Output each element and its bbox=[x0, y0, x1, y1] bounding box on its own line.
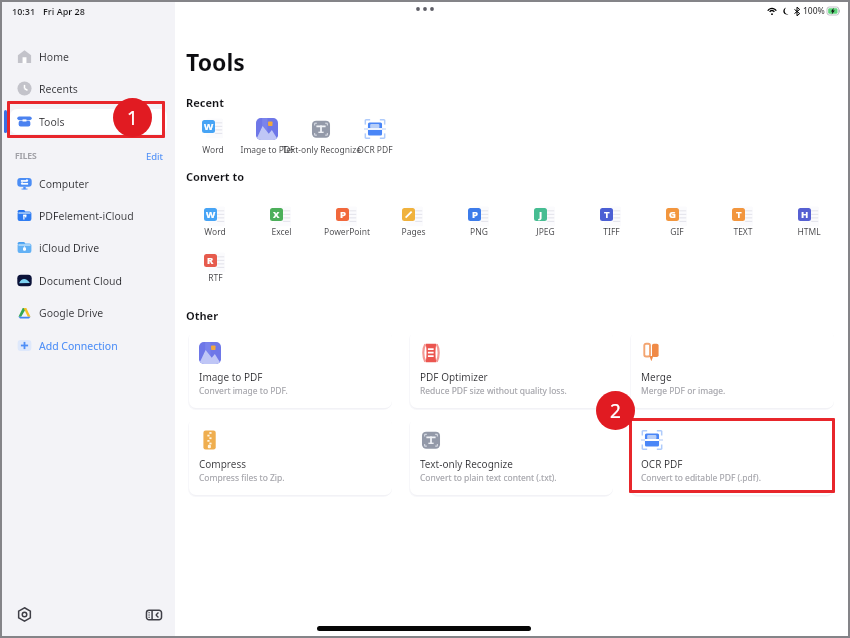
button[interactable]: OCR PDF bbox=[631, 417, 834, 495]
staticText: Pages bbox=[401, 226, 426, 238]
staticText: Merge PDF or image. bbox=[641, 385, 726, 397]
staticText: Tools bbox=[39, 115, 65, 129]
staticText: Other bbox=[186, 308, 219, 323]
button[interactable]: Google Drive bbox=[2, 300, 175, 325]
button[interactable]: Image to PDF bbox=[189, 330, 392, 408]
button[interactable]: P bbox=[446, 206, 512, 246]
button[interactable]: Merge bbox=[631, 330, 834, 408]
button[interactable]: J bbox=[512, 206, 578, 246]
staticText: Convert image to PDF. bbox=[199, 385, 288, 397]
staticText: Excel bbox=[271, 226, 292, 238]
staticText: Add Connection bbox=[39, 339, 118, 353]
staticText: Edit bbox=[146, 150, 164, 162]
staticText: 10:31 bbox=[12, 5, 36, 17]
button[interactable]: Recents bbox=[2, 76, 175, 101]
staticText: T bbox=[604, 208, 610, 221]
staticText: PowerPoint bbox=[324, 226, 370, 238]
staticText: 1 bbox=[127, 105, 138, 131]
staticText: Fri Apr 28 bbox=[43, 5, 85, 17]
staticText: P bbox=[340, 208, 346, 221]
button[interactable]: PDFelement-iCloud bbox=[2, 203, 175, 228]
staticText: Text-only Recognize bbox=[282, 144, 361, 156]
staticText: Google Drive bbox=[39, 306, 104, 320]
staticText: T bbox=[736, 208, 742, 221]
staticText: iCloud Drive bbox=[39, 241, 100, 255]
staticText: OCR PDF bbox=[357, 144, 393, 156]
staticText: PNG bbox=[470, 226, 488, 238]
staticText: Convert to plain text content (.txt). bbox=[420, 472, 557, 484]
staticText: PDFelement-iCloud bbox=[39, 209, 134, 223]
staticText: Word bbox=[202, 144, 224, 156]
staticText: 100% bbox=[803, 5, 825, 17]
staticText: J bbox=[539, 208, 543, 221]
staticText: Tools bbox=[186, 46, 245, 77]
staticText: OCR PDF bbox=[641, 457, 683, 471]
staticText: P bbox=[472, 208, 478, 221]
staticText: Image to PDF bbox=[240, 144, 295, 156]
button[interactable]: OCR PDF bbox=[330, 118, 420, 158]
button[interactable]: P bbox=[314, 206, 380, 246]
staticText: 2 bbox=[610, 398, 621, 424]
staticText: Convert to editable PDF (.pdf). bbox=[641, 472, 761, 484]
staticText: R bbox=[207, 254, 214, 267]
staticText: X bbox=[273, 208, 280, 221]
staticText: Home bbox=[39, 50, 69, 64]
button[interactable]: T bbox=[710, 206, 776, 246]
staticText: Word bbox=[204, 226, 226, 238]
button[interactable]: Pages bbox=[380, 206, 446, 246]
staticText: Recents bbox=[39, 82, 78, 96]
staticText: TEXT bbox=[733, 226, 753, 238]
staticText: Merge bbox=[641, 370, 672, 384]
button[interactable]: Document Cloud bbox=[2, 268, 175, 293]
button[interactable]: Image to PDF bbox=[222, 118, 312, 158]
staticText: RTF bbox=[208, 272, 223, 284]
button[interactable]: Text-only Recognize bbox=[276, 118, 366, 158]
staticText: W bbox=[204, 120, 214, 133]
staticText: PDF Optimizer bbox=[420, 370, 488, 384]
button[interactable]: Tools bbox=[2, 109, 175, 134]
staticText: Convert to bbox=[186, 169, 245, 184]
button[interactable]: Text-only Recognize bbox=[410, 417, 613, 495]
button[interactable]: Settings bbox=[9, 599, 40, 630]
button[interactable]: R bbox=[182, 252, 248, 292]
button[interactable]: Toggle sidebar bbox=[138, 599, 170, 631]
staticText: JPEG bbox=[536, 226, 555, 238]
button[interactable]: iCloud Drive bbox=[2, 235, 175, 260]
button[interactable]: Edit bbox=[144, 148, 166, 164]
staticText: Compress files to Zip. bbox=[199, 472, 285, 484]
staticText: Document Cloud bbox=[39, 274, 122, 288]
button[interactable]: T bbox=[578, 206, 644, 246]
button[interactable]: G bbox=[644, 206, 710, 246]
staticText: TIFF bbox=[603, 226, 620, 238]
button[interactable]: PDF Optimizer bbox=[410, 330, 613, 408]
button[interactable]: Computer bbox=[2, 171, 175, 196]
staticText: FILES bbox=[15, 150, 37, 162]
staticText: Computer bbox=[39, 177, 89, 191]
staticText: Compress bbox=[199, 457, 247, 471]
button[interactable]: X bbox=[248, 206, 314, 246]
staticText: Image to PDF bbox=[199, 370, 263, 384]
staticText: Text-only Recognize bbox=[420, 457, 513, 471]
button[interactable]: Add Connection bbox=[2, 333, 175, 358]
button[interactable]: H bbox=[776, 206, 842, 246]
staticText: H bbox=[801, 208, 809, 221]
staticText: Recent bbox=[186, 95, 224, 110]
staticText: Reduce PDF size without quality loss. bbox=[420, 385, 567, 397]
staticText: GIF bbox=[670, 226, 684, 238]
staticText: HTML bbox=[797, 226, 821, 238]
staticText: W bbox=[206, 208, 216, 221]
button[interactable]: W bbox=[168, 118, 258, 158]
button[interactable]: W bbox=[182, 206, 248, 246]
button[interactable]: Compress bbox=[189, 417, 392, 495]
button[interactable]: Home bbox=[2, 44, 175, 69]
staticText: G bbox=[669, 208, 676, 221]
